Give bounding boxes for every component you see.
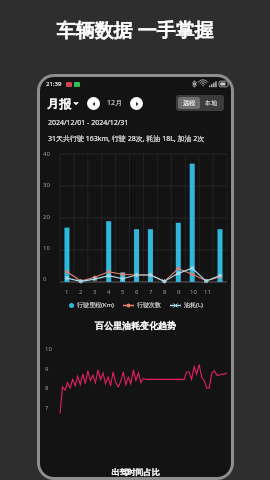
staticText: 4	[107, 288, 111, 296]
staticText: 10	[43, 244, 50, 252]
staticText: 6	[135, 288, 139, 296]
button[interactable]: Previous month	[87, 97, 100, 110]
staticText: 车辆数据 一手掌握	[0, 17, 270, 43]
staticText: 10	[190, 288, 197, 296]
staticText: 3	[93, 288, 97, 296]
staticText: 11	[204, 288, 211, 296]
button[interactable]: Next month	[130, 97, 143, 110]
button[interactable]: 月报	[47, 96, 79, 111]
staticText: 31天共行驶 163km, 行驶 28次, 耗油 18L, 加油 2次	[48, 134, 205, 144]
staticText: 百公里油耗变化趋势	[40, 320, 231, 331]
staticText: 行驶里程(Km)	[77, 301, 114, 309]
button[interactable]: 远程	[178, 97, 200, 109]
staticText: 月报	[47, 96, 71, 111]
staticText: 20	[43, 213, 50, 221]
staticText: 0	[43, 275, 47, 283]
staticText: 7	[45, 404, 49, 412]
staticText: 9	[177, 288, 181, 296]
button[interactable]: 本地	[200, 97, 222, 109]
staticText: 远程	[183, 99, 195, 107]
staticText: 行驶次数	[137, 301, 161, 309]
staticText: 2	[79, 288, 83, 296]
staticText: 12月	[107, 98, 123, 108]
staticText: 5	[121, 288, 125, 296]
staticText: 2024/12/01 - 2024/12/31	[48, 118, 129, 128]
staticText: 8	[163, 288, 167, 296]
staticText: 30	[43, 181, 50, 189]
staticText: 21:39	[46, 80, 62, 88]
staticText: 8	[45, 384, 49, 392]
staticText: 1	[65, 288, 69, 296]
staticText: 7	[149, 288, 153, 296]
staticText: 油耗(L)	[184, 301, 203, 309]
staticText: 9	[45, 365, 49, 373]
staticText: 10	[45, 345, 52, 353]
staticText: 本地	[205, 99, 217, 107]
staticText: 40	[43, 150, 50, 158]
staticText: 出驾时间占比	[40, 467, 231, 477]
